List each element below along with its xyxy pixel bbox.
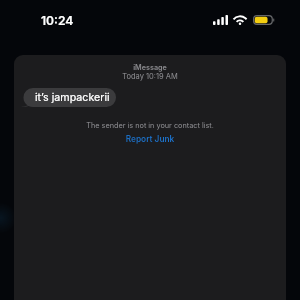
other: Cellular signal (213, 15, 228, 25)
staticText: Today 10:19 AM (14, 72, 286, 81)
staticText: Report Junk (14, 134, 286, 144)
staticText: 10:24 (41, 13, 74, 28)
staticText: it’s jampackerii (35, 91, 110, 104)
staticText: iMessage (14, 63, 286, 72)
other: Battery (253, 15, 275, 25)
button[interactable]: it’s jampackerii (21, 88, 116, 107)
other: Wi-Fi (233, 15, 247, 25)
staticText: The sender is not in your contact list. (14, 121, 286, 130)
button[interactable]: Report Junk (14, 134, 286, 145)
